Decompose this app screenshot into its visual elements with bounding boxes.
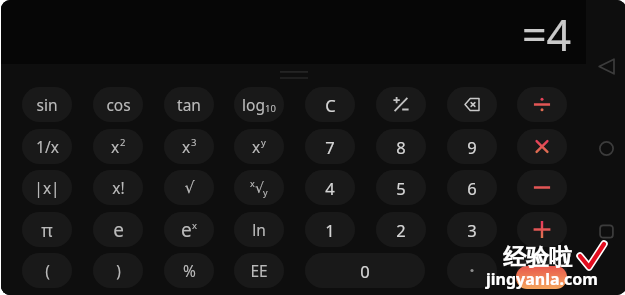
button[interactable]: √	[164, 170, 214, 205]
button[interactable]: Toggle sign	[376, 87, 426, 122]
staticText: 4	[325, 177, 335, 199]
staticText: 1/x	[36, 136, 59, 157]
staticText: √	[255, 180, 264, 196]
staticText: √	[184, 178, 195, 197]
staticText: 2	[396, 219, 406, 241]
staticText: )	[116, 260, 121, 281]
staticText: 5	[396, 177, 406, 199]
staticText: 0	[360, 260, 370, 282]
button[interactable]: x	[234, 170, 284, 205]
button[interactable]: 3	[447, 212, 497, 247]
staticText: 经验啦	[503, 243, 572, 272]
staticText: x	[182, 136, 191, 157]
button[interactable]: Decimal point	[447, 253, 497, 288]
staticText: x	[111, 136, 120, 157]
staticText: x	[192, 219, 198, 232]
staticText: |x|	[34, 177, 60, 198]
button[interactable]: 7	[305, 129, 355, 164]
staticText: ln	[252, 219, 266, 240]
button[interactable]: Recent apps	[586, 212, 625, 250]
staticText: 2	[120, 136, 126, 149]
button[interactable]: Back	[586, 47, 625, 85]
button[interactable]: EE	[234, 253, 284, 288]
button[interactable]: 4	[305, 170, 355, 205]
button[interactable]: )	[93, 253, 143, 288]
button[interactable]: (	[22, 253, 72, 288]
button[interactable]: Add	[517, 212, 567, 247]
staticText: tan	[177, 94, 201, 115]
button[interactable]: x	[234, 129, 284, 164]
staticText: 6	[467, 177, 477, 199]
staticText: 10	[265, 102, 276, 115]
button[interactable]: sin	[22, 87, 72, 122]
button[interactable]: 1/x	[22, 129, 72, 164]
staticText: sin	[36, 94, 58, 115]
staticText: jingyanla.com	[486, 268, 598, 290]
button[interactable]: ln	[234, 212, 284, 247]
staticText: C	[325, 94, 336, 116]
button[interactable]: 0	[305, 253, 425, 288]
button[interactable]: 8	[376, 129, 426, 164]
staticText: 3	[191, 136, 197, 149]
button[interactable]: 6	[447, 170, 497, 205]
staticText: e	[181, 217, 192, 243]
staticText: x	[252, 136, 261, 157]
staticText: 8	[396, 136, 406, 158]
staticText: log	[242, 94, 265, 115]
button[interactable]: π	[22, 212, 72, 247]
button[interactable]: Subtract	[517, 170, 567, 205]
staticText: 1	[325, 219, 335, 241]
button[interactable]: Equals	[517, 253, 567, 288]
button[interactable]: Backspace	[447, 87, 497, 122]
button[interactable]: x!	[93, 170, 143, 205]
button[interactable]: cos	[93, 87, 143, 122]
button[interactable]: 9	[447, 129, 497, 164]
button[interactable]: e	[93, 212, 143, 247]
staticText: %	[183, 260, 196, 281]
staticText: 7	[325, 136, 335, 158]
button[interactable]: |x|	[22, 170, 72, 205]
staticText: y	[263, 186, 268, 198]
button[interactable]: log	[234, 87, 284, 122]
staticText: EE	[250, 260, 268, 281]
button[interactable]: 2	[376, 212, 426, 247]
button[interactable]: %	[164, 253, 214, 288]
button[interactable]: x	[93, 129, 143, 164]
button[interactable]: 5	[376, 170, 426, 205]
staticText: 3	[467, 219, 477, 241]
staticText: =4	[522, 5, 572, 64]
staticText: 9	[467, 136, 477, 158]
button[interactable]: Home	[586, 129, 625, 167]
button[interactable]: e	[164, 212, 214, 247]
button[interactable]: Divide	[517, 87, 567, 122]
staticText: e	[113, 217, 124, 243]
button[interactable]: 1	[305, 212, 355, 247]
staticText: x	[250, 177, 255, 189]
staticText: π	[41, 218, 53, 242]
staticText: (	[45, 260, 50, 281]
button[interactable]: Multiply	[517, 129, 567, 164]
staticText: cos	[106, 94, 131, 115]
staticText: x!	[112, 177, 125, 198]
button[interactable]: x	[164, 129, 214, 164]
staticText: y	[261, 136, 266, 149]
button[interactable]: tan	[164, 87, 214, 122]
button[interactable]: C	[305, 87, 355, 122]
